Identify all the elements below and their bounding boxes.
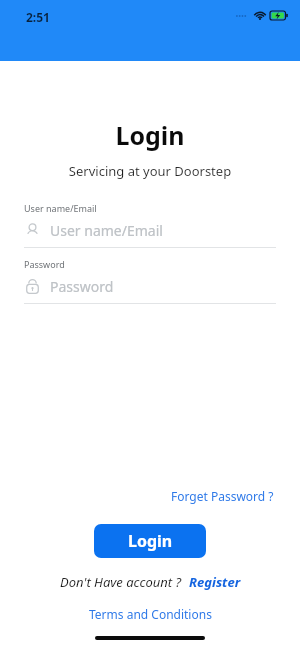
staticText: 2:51 bbox=[26, 9, 50, 25]
button[interactable]: Forget Password ? bbox=[169, 486, 276, 506]
staticText: User name/Email bbox=[24, 202, 97, 214]
staticText: User name/Email bbox=[50, 221, 163, 240]
staticText: Servicing at your Doorstep bbox=[0, 162, 300, 180]
staticText: Login bbox=[128, 530, 173, 552]
staticText: Password bbox=[24, 258, 65, 270]
staticText: Terms and Conditions bbox=[89, 606, 212, 622]
button[interactable]: Login bbox=[94, 524, 206, 558]
button[interactable]: Password bbox=[24, 273, 276, 299]
staticText: Password bbox=[50, 277, 114, 296]
button[interactable]: Register bbox=[189, 573, 241, 591]
button[interactable]: User name/Email bbox=[24, 217, 276, 243]
staticText: Login bbox=[0, 118, 300, 152]
staticText: Forget Password ? bbox=[171, 488, 274, 504]
staticText: Register bbox=[189, 573, 241, 591]
button[interactable]: Terms and Conditions bbox=[87, 604, 214, 624]
staticText: Don't Have account ? bbox=[60, 573, 182, 591]
